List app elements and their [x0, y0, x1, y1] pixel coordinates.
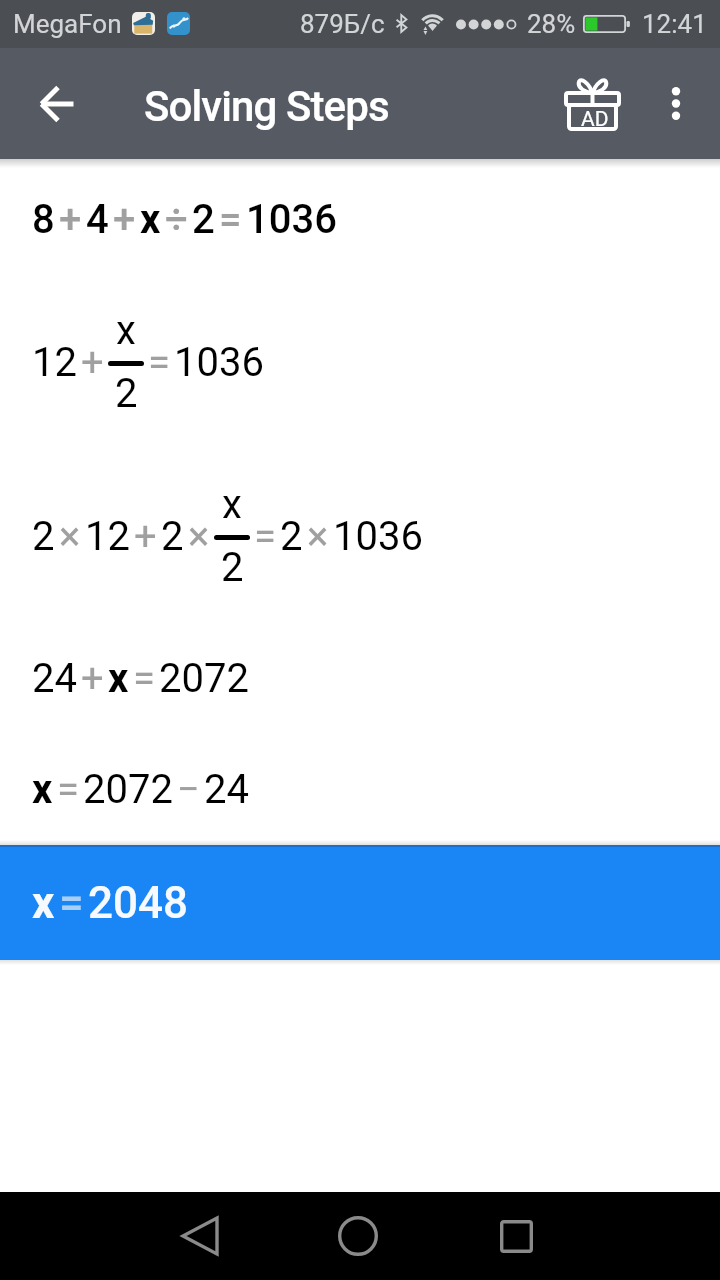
staticText: =: [57, 766, 79, 813]
staticText: =: [133, 655, 155, 702]
staticText: +: [81, 655, 104, 702]
button[interactable]: [0, 170, 720, 270]
button[interactable]: [0, 286, 720, 426]
button[interactable]: [0, 630, 720, 730]
button[interactable]: More options: [640, 48, 712, 159]
staticText: +: [81, 339, 104, 386]
button[interactable]: x: [0, 845, 720, 960]
staticText: =: [219, 196, 242, 243]
staticText: x: [222, 481, 242, 528]
button[interactable]: Back: [140, 1192, 260, 1280]
staticText: =: [254, 513, 276, 560]
button[interactable]: Recent apps: [456, 1192, 576, 1280]
staticText: ×: [188, 513, 210, 560]
staticText: Solving Steps: [144, 82, 389, 131]
staticText: 1036: [333, 513, 423, 560]
staticText: x: [32, 877, 55, 929]
staticText: 28%: [527, 9, 576, 39]
staticText: x: [140, 196, 161, 243]
staticText: +: [113, 196, 136, 243]
staticText: AD: [581, 107, 609, 132]
button[interactable]: Home: [298, 1192, 418, 1280]
staticText: 1036: [246, 196, 337, 243]
staticText: 2072: [83, 766, 173, 813]
button[interactable]: [0, 750, 720, 840]
staticText: 2: [221, 544, 244, 591]
staticText: 24: [204, 766, 249, 813]
staticText: +: [59, 196, 82, 243]
staticText: +: [134, 513, 157, 560]
staticText: 2: [161, 513, 184, 560]
staticText: 12: [85, 513, 130, 560]
staticText: x: [116, 307, 136, 354]
staticText: MegaFon: [13, 9, 122, 39]
button[interactable]: Watch ad for gift: [537, 48, 648, 159]
staticText: 12:41: [642, 9, 707, 39]
staticText: 2: [280, 513, 303, 560]
button[interactable]: [0, 460, 720, 600]
staticText: −: [177, 766, 200, 813]
staticText: 2: [192, 196, 215, 243]
staticText: ×: [307, 513, 329, 560]
staticText: 4: [86, 196, 109, 243]
staticText: ×: [59, 513, 81, 560]
staticText: 8: [32, 196, 55, 243]
button[interactable]: Navigate up: [11, 48, 103, 159]
staticText: x: [108, 655, 129, 702]
staticText: 24: [32, 655, 77, 702]
staticText: =: [59, 877, 84, 929]
staticText: 879Б/с: [300, 9, 385, 39]
staticText: =: [148, 339, 170, 386]
staticText: 2: [115, 370, 138, 417]
staticText: 2: [32, 513, 55, 560]
staticText: 12: [32, 339, 77, 386]
staticText: 1036: [174, 339, 264, 386]
staticText: 2072: [159, 655, 249, 702]
staticText: x: [32, 766, 53, 813]
staticText: ÷: [165, 196, 188, 243]
staticText: 2048: [88, 877, 189, 929]
